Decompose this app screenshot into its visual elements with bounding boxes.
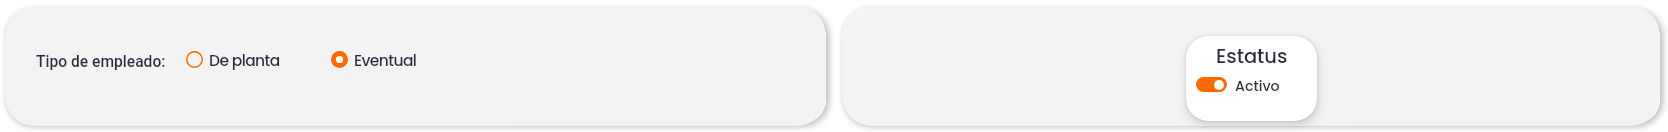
button[interactable]: De planta	[186, 50, 280, 72]
staticText: De planta	[209, 50, 280, 72]
button[interactable]: Eventual	[331, 50, 417, 72]
staticText: Estatus	[1216, 43, 1288, 70]
button[interactable]: Estatus: Activo	[1196, 77, 1227, 92]
staticText: Tipo de empleado:	[36, 53, 166, 71]
staticText: Eventual	[354, 50, 417, 72]
staticText: Activo	[1235, 76, 1280, 96]
